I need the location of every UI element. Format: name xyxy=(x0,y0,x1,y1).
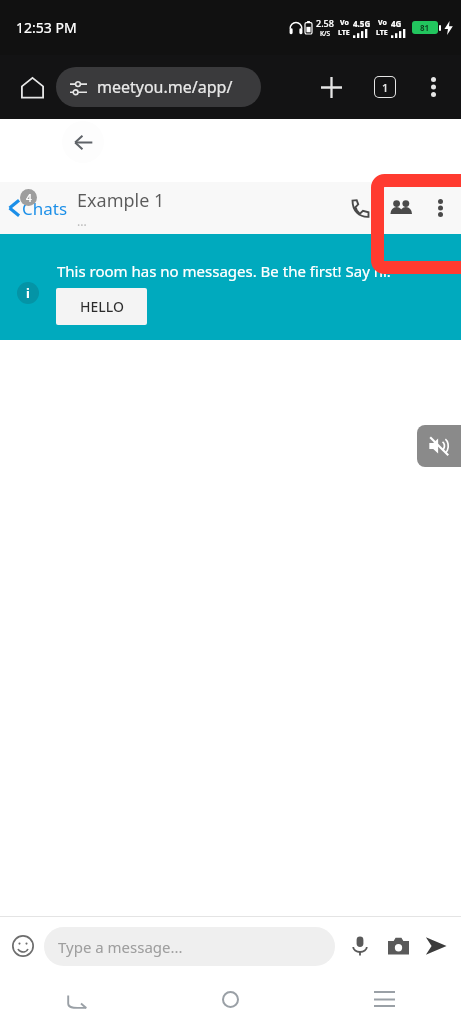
button[interactable]: Record voice message xyxy=(341,927,379,965)
button[interactable]: Home xyxy=(10,65,54,109)
button[interactable]: Camera xyxy=(379,927,417,965)
staticText: Chats xyxy=(22,197,68,220)
staticText: 4 xyxy=(26,191,32,205)
button[interactable]: Recent apps xyxy=(307,975,461,1024)
staticText: HELLO xyxy=(80,297,124,316)
staticText: i xyxy=(26,284,30,302)
button[interactable]: Send xyxy=(417,927,455,965)
staticText: 12:53 PM xyxy=(16,18,77,37)
staticText: This room has no messages. Be the first!… xyxy=(57,261,391,281)
button[interactable]: Information xyxy=(17,282,39,304)
button[interactable]: Call xyxy=(341,184,379,232)
staticText: 81 xyxy=(420,22,430,33)
button[interactable]: meetyou.me/app/ xyxy=(56,67,261,107)
staticText: LTE xyxy=(338,28,350,38)
staticText: ... xyxy=(77,213,87,229)
button[interactable]: Switch tabs, 1 open xyxy=(365,67,405,107)
staticText: Vo xyxy=(378,18,387,28)
button[interactable]: Back xyxy=(62,121,104,163)
button[interactable]: More options xyxy=(423,184,457,232)
button[interactable]: Home xyxy=(153,975,307,1024)
button[interactable]: Emoji xyxy=(4,927,42,965)
button[interactable]: Back xyxy=(0,975,153,1024)
staticText: 4.5G xyxy=(353,18,371,29)
button[interactable]: HELLO xyxy=(56,288,147,325)
button[interactable]: Unmute xyxy=(417,425,461,467)
staticText: Type a message... xyxy=(58,937,183,957)
button[interactable]: New tab xyxy=(311,67,351,107)
button[interactable]: Example 1 xyxy=(77,188,165,229)
staticText: LTE xyxy=(376,28,388,38)
staticText: 2.58 xyxy=(316,17,334,29)
staticText: Vo xyxy=(340,18,349,28)
staticText: 1 xyxy=(382,80,389,95)
staticText: Example 1 xyxy=(77,188,165,213)
button[interactable]: Members xyxy=(379,184,423,232)
staticText: 4G xyxy=(391,18,402,29)
staticText: K/S xyxy=(320,29,331,38)
button[interactable]: Chats xyxy=(0,182,68,234)
staticText: meetyou.me/app/ xyxy=(97,76,233,98)
button[interactable]: Type a message... xyxy=(44,927,335,966)
button[interactable]: More options xyxy=(413,67,453,107)
